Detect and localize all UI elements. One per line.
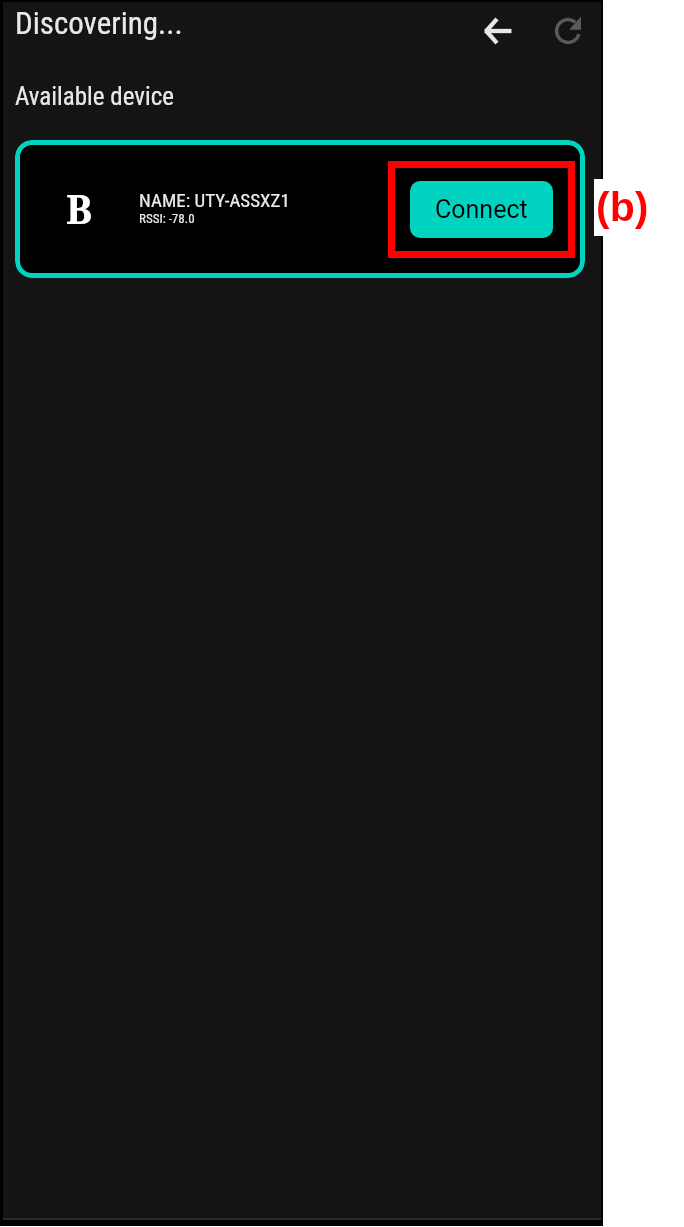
staticText: RSSI: -78.0 — [139, 211, 195, 226]
button[interactable]: B — [15, 140, 585, 278]
staticText: (b) — [596, 184, 649, 230]
staticText: B — [66, 182, 93, 235]
staticText: NAME: UTY-ASSXZ1 — [139, 189, 290, 211]
staticText: Connect — [435, 195, 528, 224]
button[interactable]: Back — [468, 2, 526, 60]
staticText: Available device — [15, 82, 174, 111]
staticText: Discovering... — [15, 5, 183, 41]
button[interactable]: Refresh — [539, 2, 597, 60]
button[interactable]: Connect — [410, 181, 553, 238]
